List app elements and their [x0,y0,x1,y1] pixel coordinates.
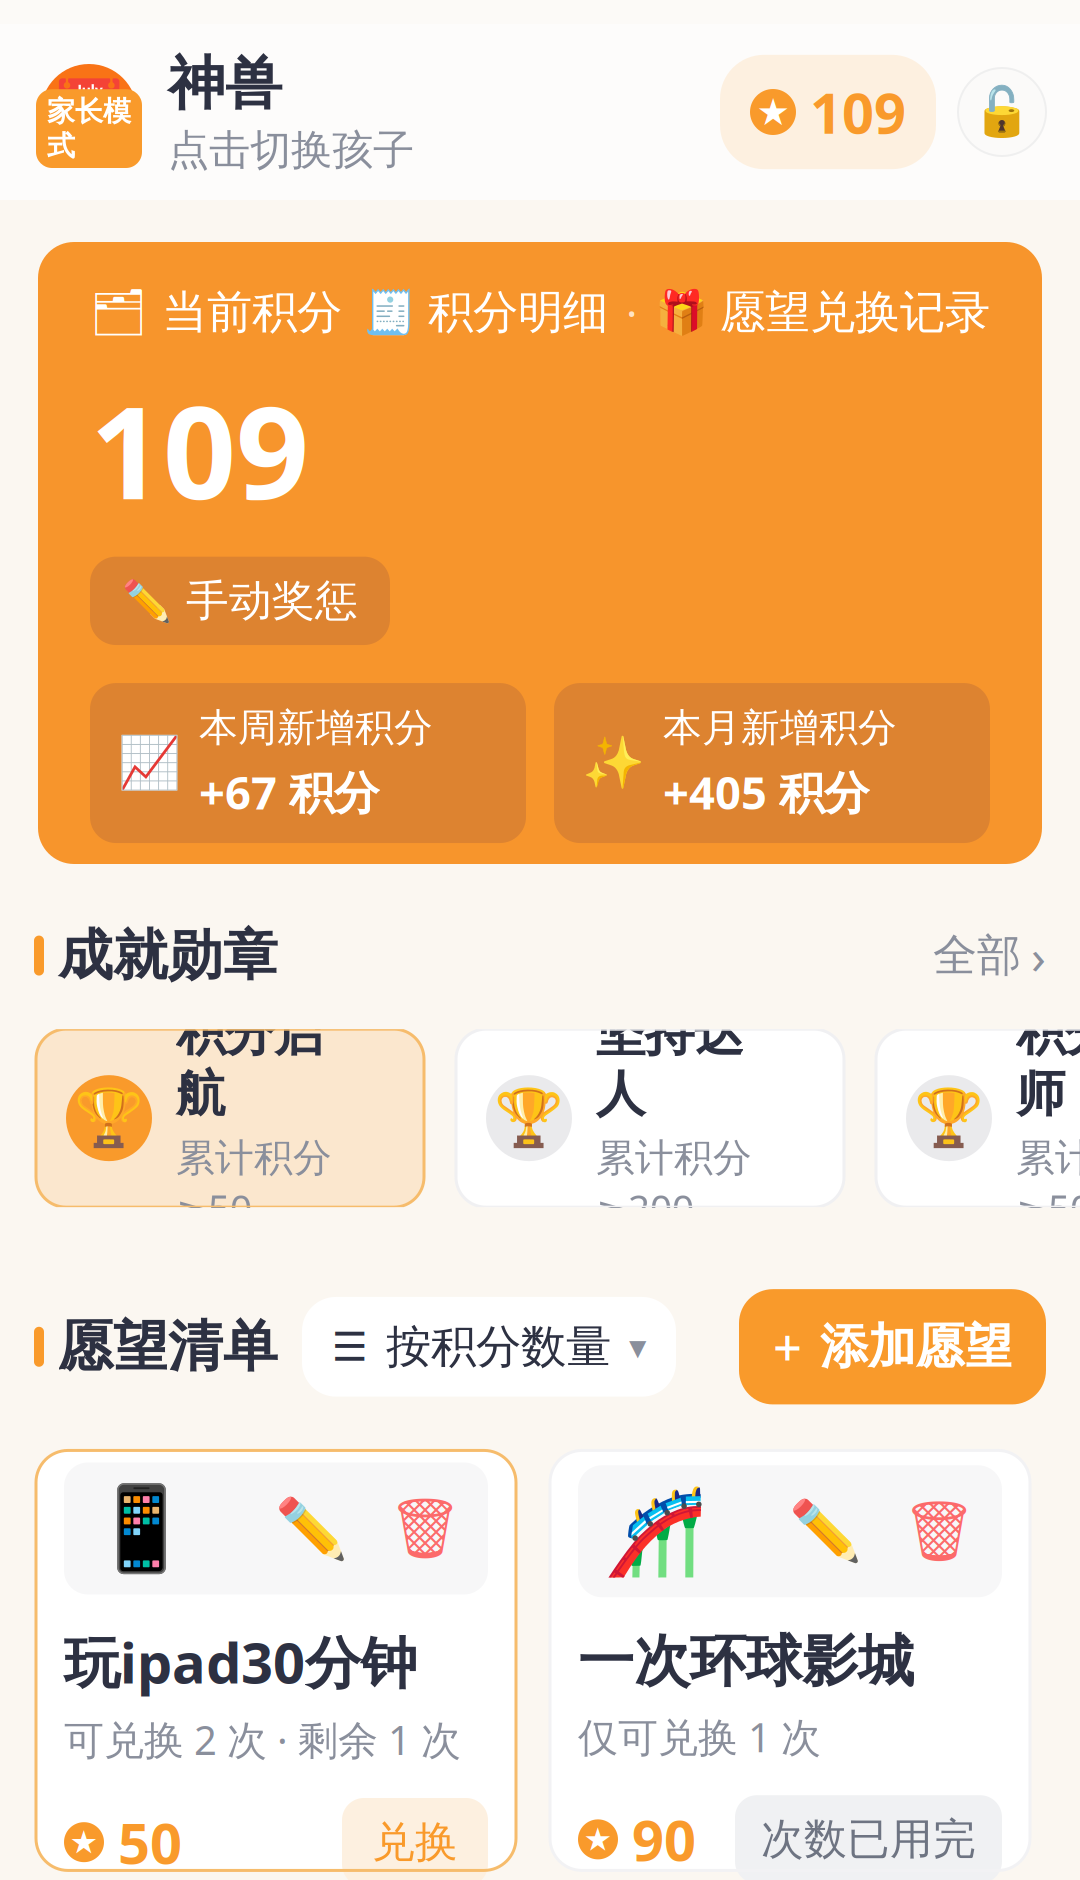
staticText: 本月新增积分 [663,704,897,752]
staticText: 手动奖惩 [186,575,358,627]
staticText: 累计积分≥500 [1016,1134,1080,1233]
staticText: ✨ [582,734,645,792]
staticText: 📱 [90,1481,193,1576]
staticText: 🗑 [902,1498,976,1565]
button[interactable]: ✏️ [90,557,390,645]
staticText: 🏆 [914,1086,984,1150]
button[interactable]: 删除愿望 [902,1498,976,1565]
staticText: 🎢 [604,1484,707,1578]
staticText: 添加愿望 [820,1317,1012,1376]
staticText: 🏆 [74,1086,144,1150]
button[interactable]: 🧾 [363,284,608,340]
staticText: 🔓 [972,85,1032,139]
button[interactable]: 编辑愿望 [789,1498,862,1565]
staticText: 🗑 [388,1495,462,1562]
staticText: 109 [810,75,906,149]
staticText: ✏️ [789,1498,862,1565]
staticText: ▾ [629,1327,646,1366]
button[interactable]: 锁定家长模式 [958,68,1046,156]
staticText: ★ [756,91,789,133]
staticText: 一次环球影城 [578,1627,914,1696]
staticText: 🏆 [494,1086,564,1150]
button[interactable]: 编辑愿望 [275,1495,348,1562]
staticText: ☰ [332,1324,368,1369]
staticText: 积分启航 [176,1003,323,1124]
staticText: ✏️ [275,1495,348,1562]
button[interactable]: 删除愿望 [388,1495,462,1562]
staticText: 愿望兑换记录 [720,284,990,340]
staticText: 可兑换 2 次 · 剩余 1 次 [64,1713,461,1766]
staticText: 成就勋章 [58,922,278,989]
staticText: 累计积分≥200 [596,1134,752,1233]
staticText: 家长模式 [47,94,131,163]
button[interactable]: 次数已用完 [735,1795,1002,1880]
button[interactable]: + [739,1289,1046,1404]
staticText: +405 积分 [663,762,869,822]
staticText: ✏️ [122,578,172,624]
staticText: 仅可兑换 1 次 [578,1710,821,1763]
button[interactable]: 📱 [36,1450,516,1870]
staticText: 🎁 [655,288,708,337]
staticText: 📈 [118,734,181,792]
staticText: + [773,1313,802,1380]
staticText: +67 积分 [199,762,379,822]
staticText: 🗂 [90,286,148,338]
button[interactable]: 🏆 [36,1029,424,1207]
staticText: 本周新增积分 [199,704,433,752]
button[interactable]: 🎢 [550,1450,1030,1870]
button[interactable]: 全部 [933,924,1046,987]
staticText: 点击切换孩子 [168,125,414,176]
button[interactable]: 🎁 [655,284,990,340]
button[interactable]: ★ [720,55,936,169]
button[interactable]: 🏆 [876,1029,1080,1207]
staticText: 109 [90,365,309,535]
staticText: 积分大师 [1016,1003,1080,1124]
button[interactable]: 兑换 [342,1798,488,1880]
staticText: 坚持达人 [596,1003,743,1124]
button[interactable]: 🗂 [90,284,342,340]
staticText: 次数已用完 [761,1813,976,1866]
staticText: 90 [632,1802,696,1877]
staticText: › [1031,924,1046,987]
staticText: 按积分数量 [386,1319,611,1375]
staticText: 当前积分 [162,284,342,340]
staticText: 50 [118,1805,182,1879]
staticText: ★ [69,1824,98,1860]
staticText: 累计积分≥50 [176,1134,332,1233]
staticText: 🧾 [363,288,416,337]
staticText: 愿望清单 [58,1313,278,1380]
staticText: 兑换 [372,1816,458,1868]
button[interactable]: 🏆 [456,1029,844,1207]
staticText: 📅 [51,77,127,147]
staticText: ★ [583,1821,612,1857]
staticText: · [626,284,637,341]
staticText: 全部 [933,929,1021,983]
staticText: 积分明细 [428,284,608,340]
button[interactable]: ☰ [302,1297,676,1397]
staticText: 神兽 [168,48,282,119]
staticText: 玩ipad30分钟 [64,1624,417,1699]
